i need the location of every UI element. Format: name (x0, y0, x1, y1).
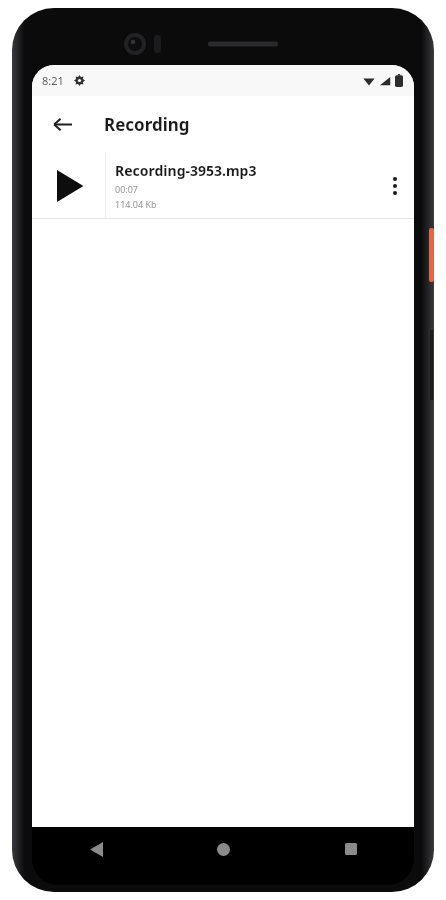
staticText: 8:21 (42, 73, 64, 88)
staticText: Recording-3953.mp3 (115, 161, 257, 180)
staticText: 00:07 (115, 183, 139, 195)
staticText: 114.04 Kb (115, 198, 157, 210)
button[interactable]: Home (160, 827, 287, 871)
button[interactable]: Play (32, 152, 105, 219)
button[interactable]: Back (45, 107, 79, 141)
button[interactable]: Play (32, 152, 414, 219)
staticText: Recording (104, 113, 190, 136)
button[interactable]: Recent apps (287, 827, 414, 871)
button[interactable]: Back (32, 827, 160, 871)
button[interactable]: More options (376, 152, 414, 219)
